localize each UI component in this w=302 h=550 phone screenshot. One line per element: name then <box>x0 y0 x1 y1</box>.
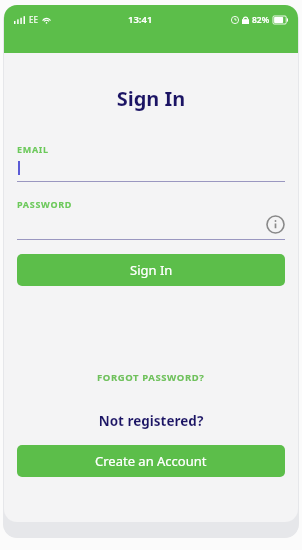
staticText: EMAIL <box>17 143 49 155</box>
staticText: Sign In <box>130 261 173 279</box>
button[interactable]: Show password info <box>17 210 285 239</box>
button[interactable]: Show password info <box>266 215 285 234</box>
staticText: Not registered? <box>4 412 298 430</box>
button[interactable]: Sign In <box>17 254 285 286</box>
staticText: 13:41 <box>128 13 153 26</box>
staticText: PASSWORD <box>17 198 73 210</box>
staticText: 82% <box>252 14 270 26</box>
staticText: Sign In <box>4 85 298 112</box>
staticText: FORGOT PASSWORD? <box>97 371 205 384</box>
staticText: Create an Account <box>95 452 207 470</box>
staticText: EE <box>29 14 38 25</box>
button[interactable]: Create an Account <box>17 445 285 477</box>
button[interactable]: FORGOT PASSWORD? <box>4 364 298 390</box>
button[interactable] <box>17 155 285 181</box>
